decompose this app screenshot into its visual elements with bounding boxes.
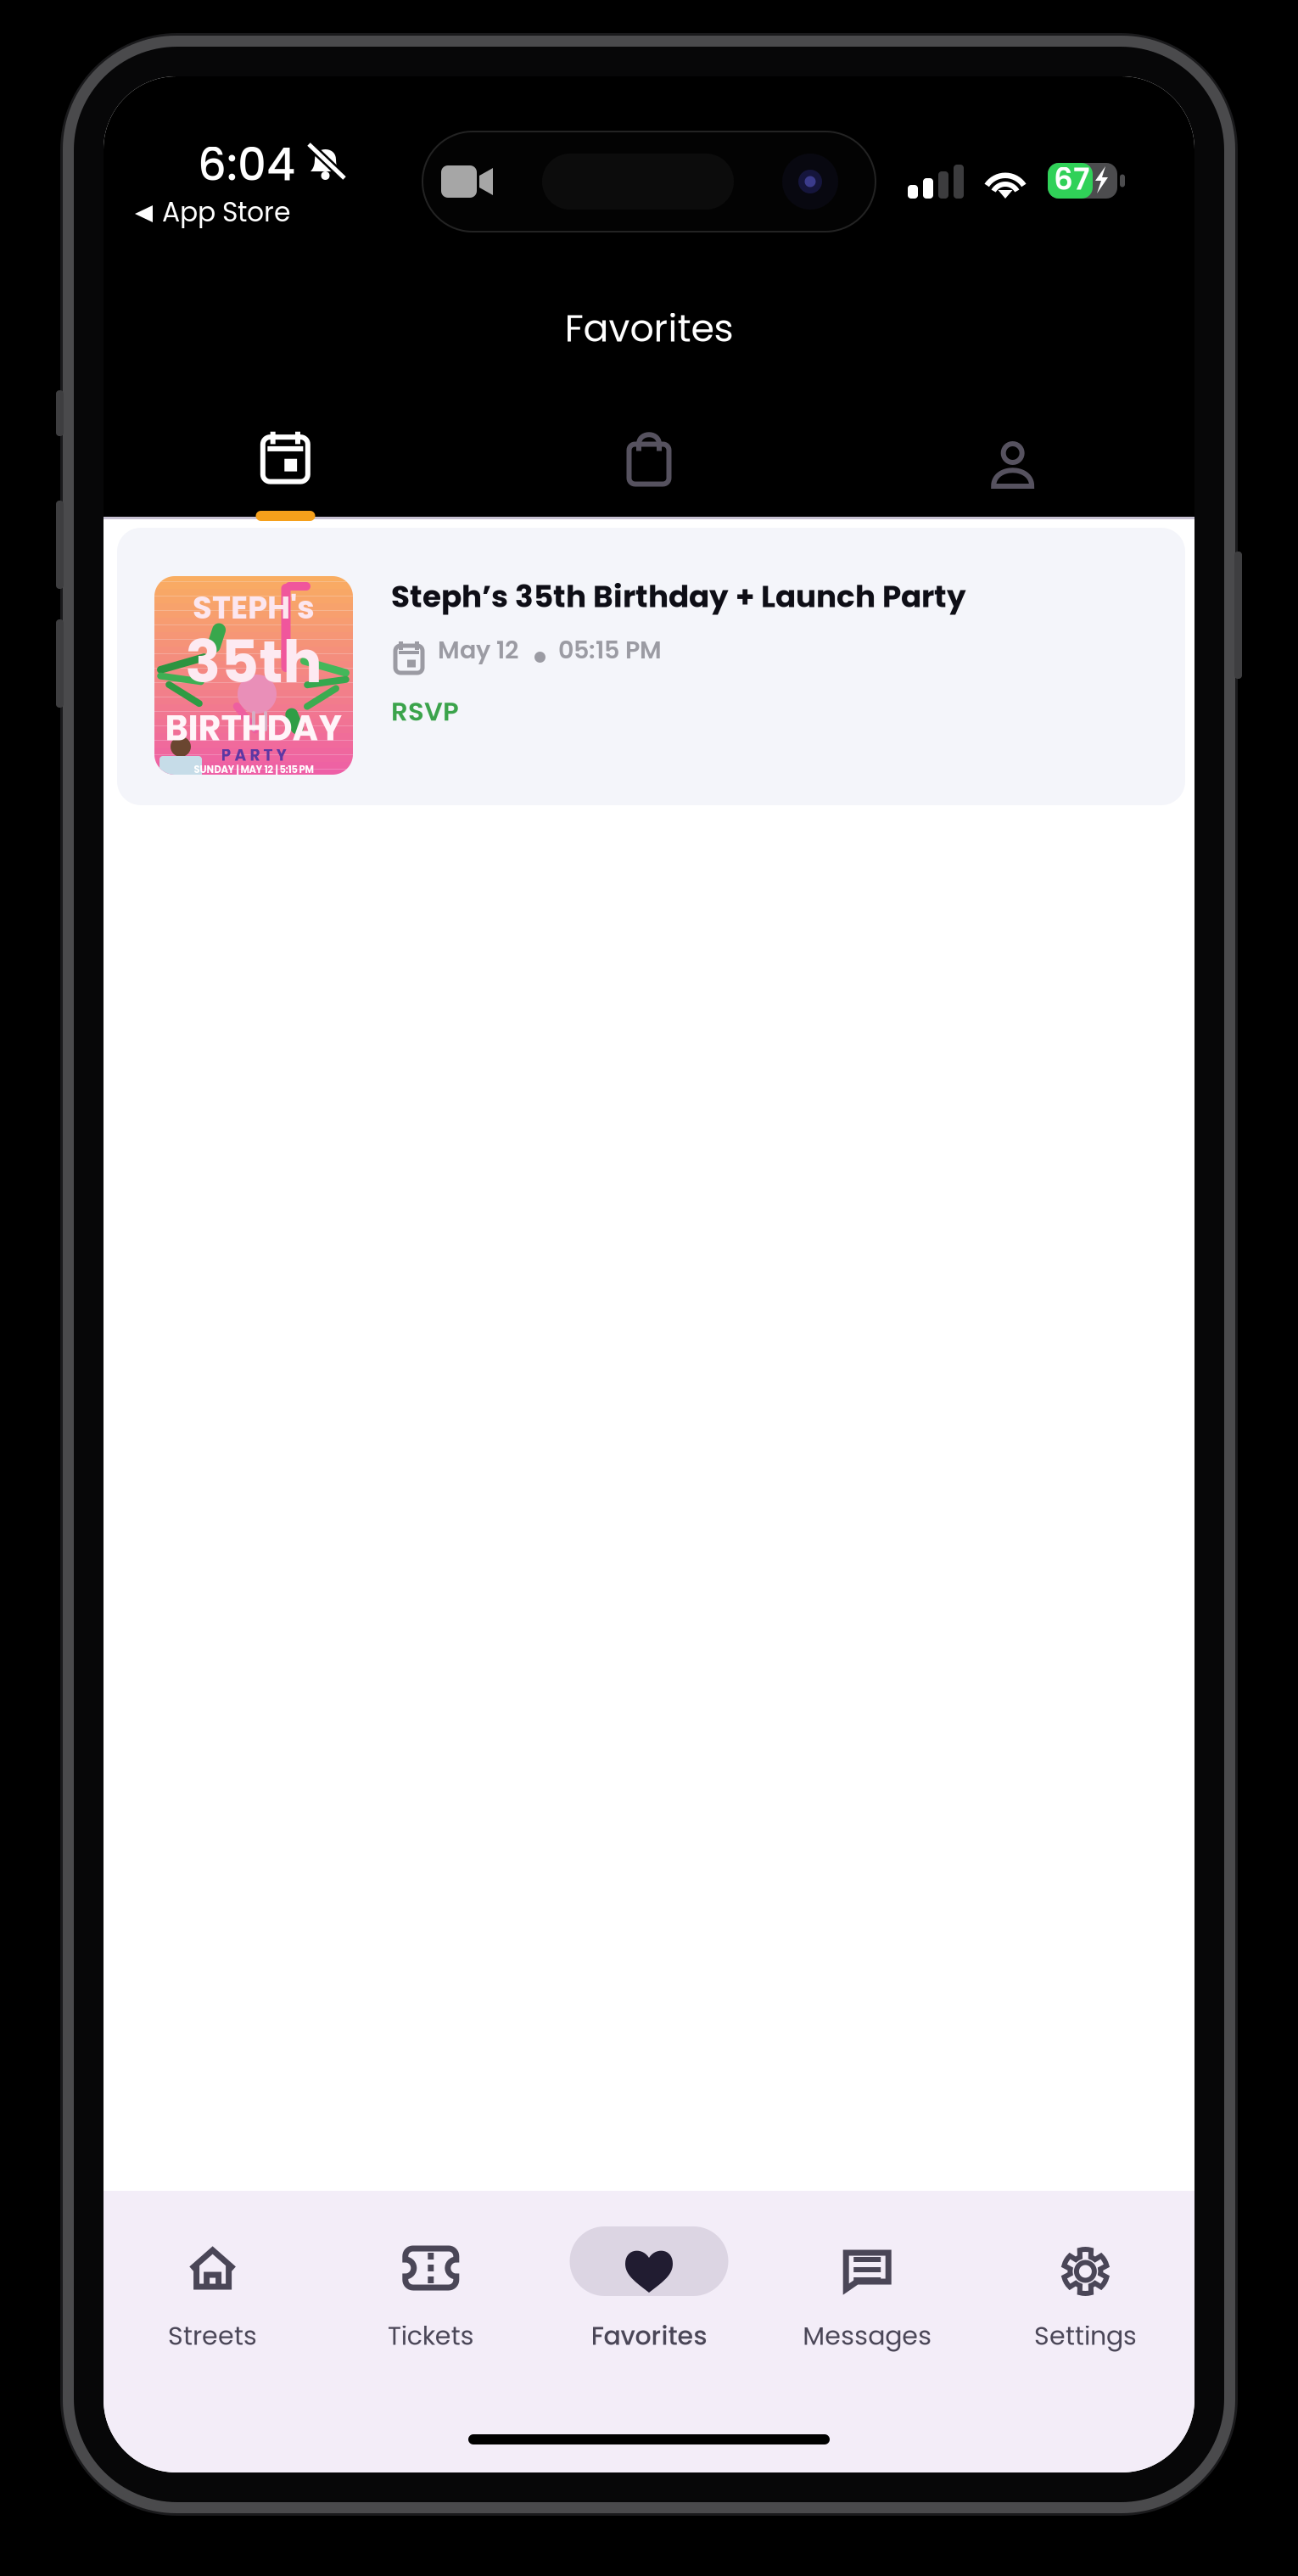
staticText: 6:04 bbox=[198, 133, 295, 196]
staticText: Streets bbox=[168, 2318, 257, 2354]
button[interactable]: Settings bbox=[976, 2191, 1194, 2360]
staticText: 35th bbox=[185, 621, 322, 703]
button[interactable]: Messages bbox=[758, 2191, 976, 2360]
staticText: Tickets bbox=[388, 2318, 474, 2354]
staticText: App Store bbox=[162, 193, 290, 231]
staticText: May 12 bbox=[438, 633, 518, 667]
button[interactable]: Profile bbox=[831, 407, 1194, 501]
staticText: Messages bbox=[803, 2318, 932, 2354]
staticText: RSVP bbox=[391, 693, 459, 730]
button[interactable]: Tickets bbox=[322, 2191, 540, 2360]
button[interactable]: Shop bbox=[467, 407, 831, 501]
staticText: BIRTHDAY bbox=[165, 703, 342, 753]
button[interactable]: Favorites bbox=[540, 2191, 758, 2360]
button[interactable]: STEPH's bbox=[117, 528, 1185, 805]
staticText: Favorites bbox=[591, 2318, 707, 2354]
staticText: 67 bbox=[1054, 158, 1090, 200]
button[interactable]: Streets bbox=[104, 2191, 322, 2360]
button[interactable]: Events bbox=[104, 407, 467, 501]
staticText: Settings bbox=[1034, 2318, 1137, 2354]
staticText: SUNDAY | MAY 12 | 5:15 PM bbox=[194, 763, 313, 776]
staticText: Steph’s 35th Birthday + Launch Party bbox=[391, 575, 966, 618]
staticText: Favorites bbox=[565, 302, 733, 355]
staticText: STEPH's bbox=[193, 585, 315, 630]
staticText: 05:15 PM bbox=[558, 633, 662, 667]
staticText: P A R T Y bbox=[221, 744, 286, 766]
